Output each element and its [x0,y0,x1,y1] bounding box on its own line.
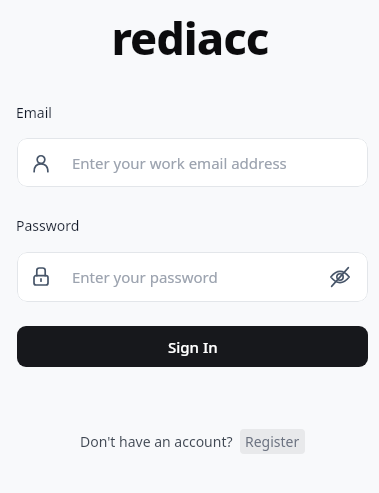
staticText: Enter your password [72,267,218,287]
staticText: Enter your work email address [72,153,287,173]
staticText: Sign In [168,337,218,357]
button[interactable]: Enter your password [17,252,368,302]
button[interactable] [330,268,350,286]
button[interactable]: Sign In [17,326,368,367]
button[interactable]: Enter your work email address [17,138,368,187]
staticText: rediacc [111,8,269,68]
button[interactable]: Register [240,429,305,454]
staticText: Password [16,216,80,235]
staticText: Register [245,432,300,451]
staticText: Email [16,103,52,122]
staticText: Don't have an account? [80,432,233,451]
